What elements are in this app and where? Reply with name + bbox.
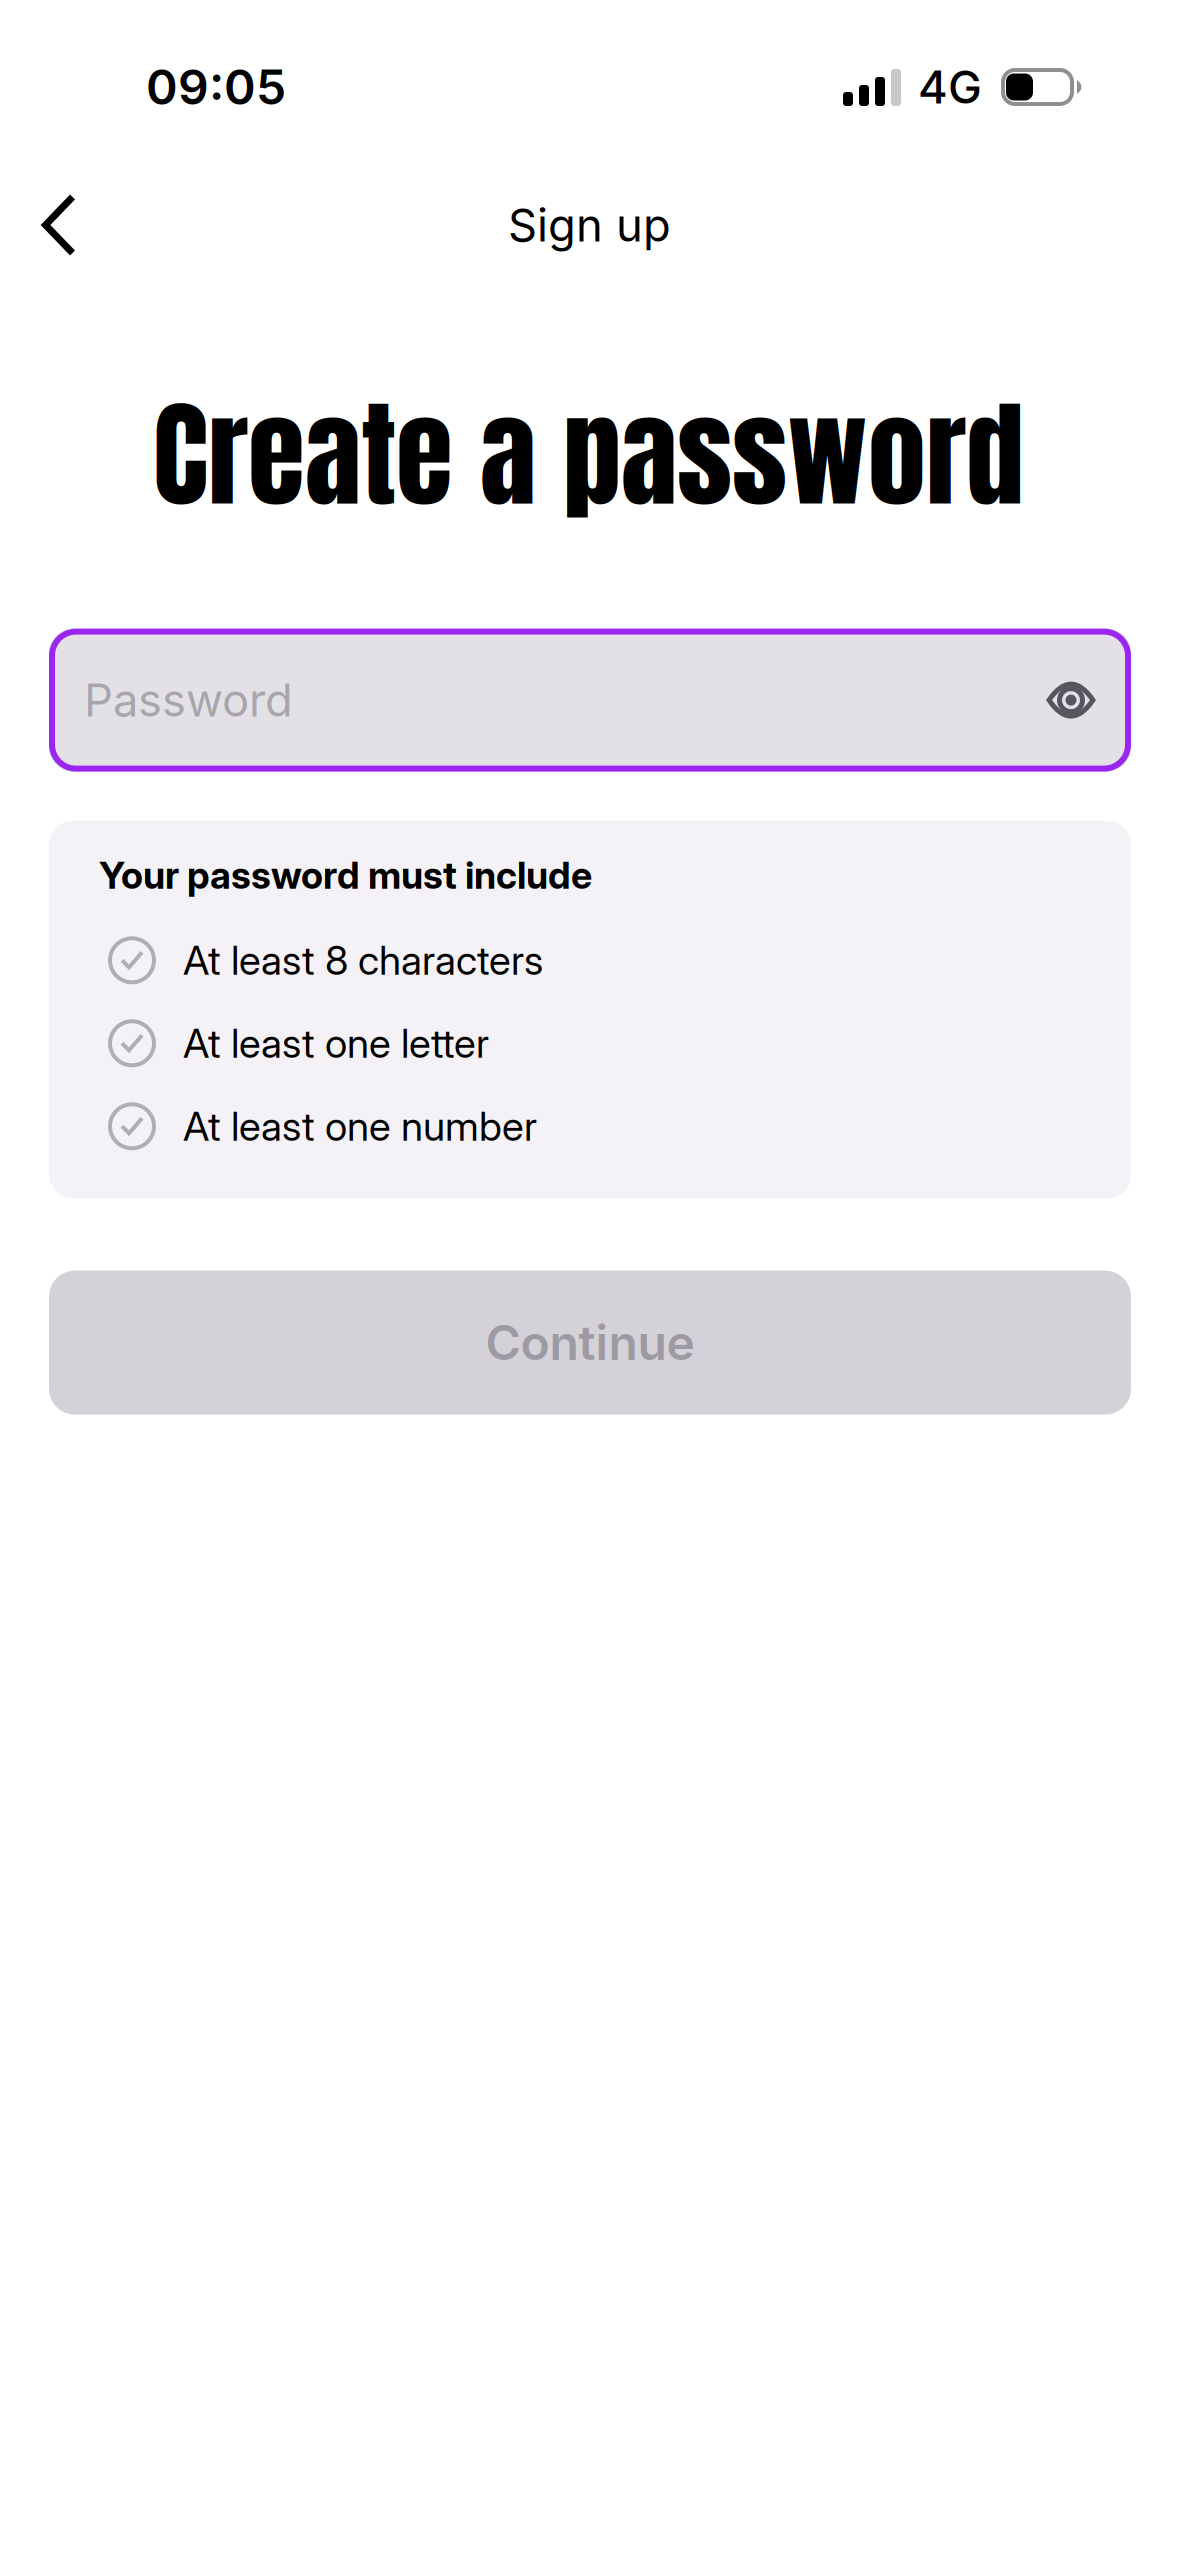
button[interactable]: Continue xyxy=(49,1271,1131,1415)
staticText: Create a password xyxy=(153,367,1024,542)
button[interactable]: Back xyxy=(12,177,106,273)
staticText: 4G xyxy=(918,60,982,114)
staticText: 09:05 xyxy=(146,58,286,116)
staticText: Your password must include xyxy=(99,853,592,898)
button[interactable]: Password xyxy=(49,629,1131,772)
staticText: At least one number xyxy=(183,1102,537,1150)
staticText: Sign up xyxy=(508,198,671,252)
button[interactable]: Show password xyxy=(1033,662,1109,738)
staticText: Password xyxy=(84,673,293,728)
staticText: At least 8 characters xyxy=(183,936,543,984)
staticText: At least one letter xyxy=(183,1019,489,1067)
staticText: Continue xyxy=(485,1314,694,1372)
